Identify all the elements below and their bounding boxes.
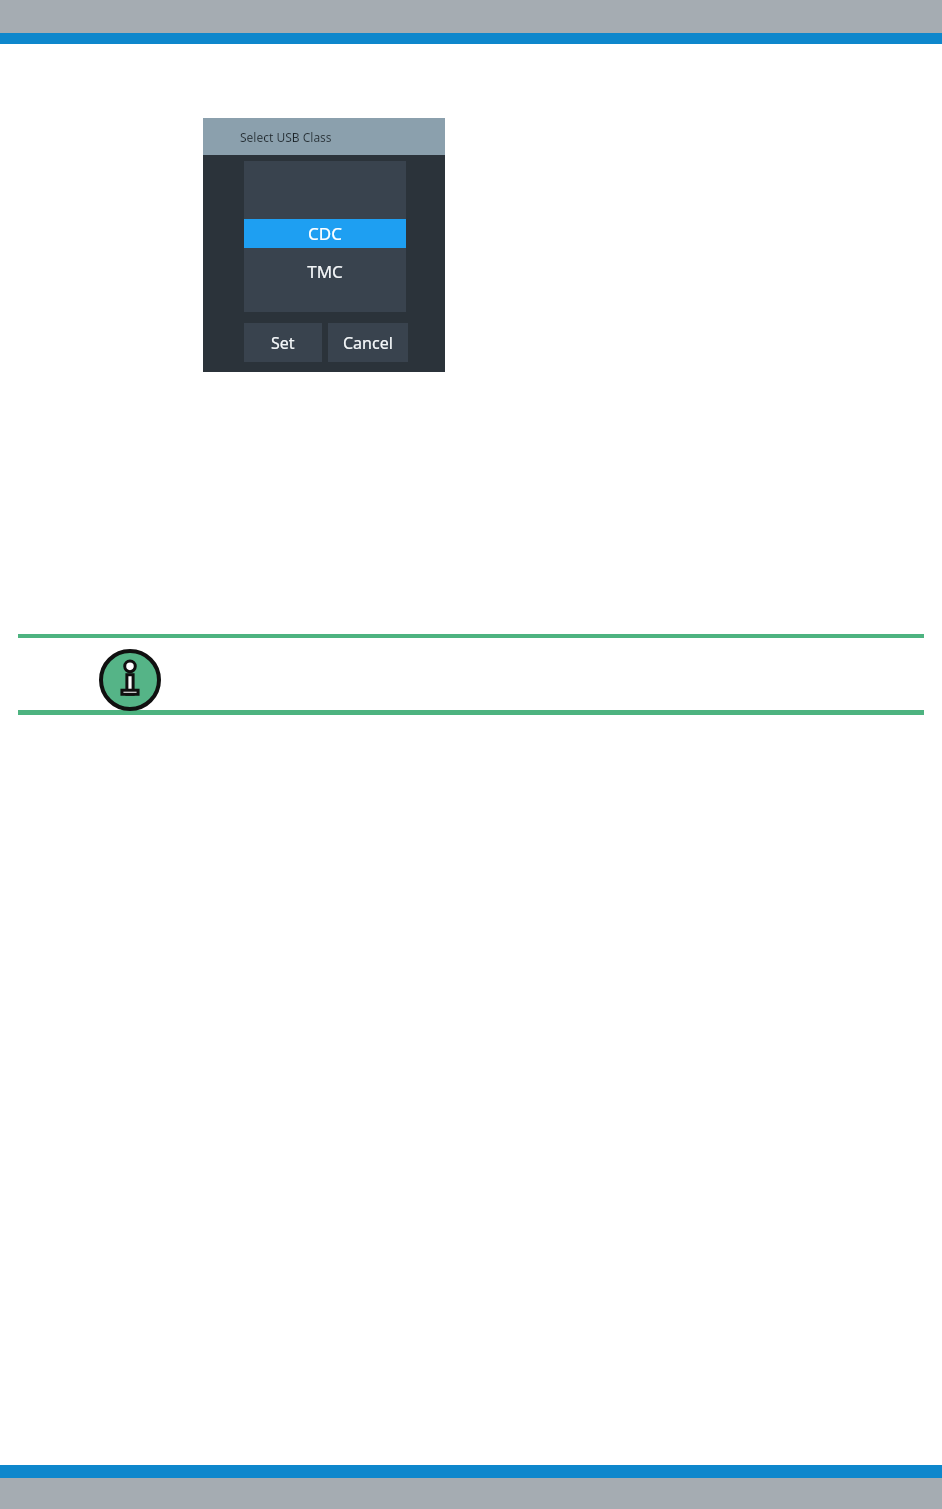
staticText: CDC [308,222,342,245]
staticText: Cancel [343,332,393,354]
button[interactable]: TMC [244,248,406,306]
button[interactable]: Set [244,323,322,362]
staticText: Set [271,332,295,354]
button[interactable]: CDC [244,219,406,248]
other: Information [99,649,161,711]
staticText: Select USB Class [240,129,332,145]
staticText: TMC [307,260,343,283]
button[interactable]: Cancel [328,323,408,362]
